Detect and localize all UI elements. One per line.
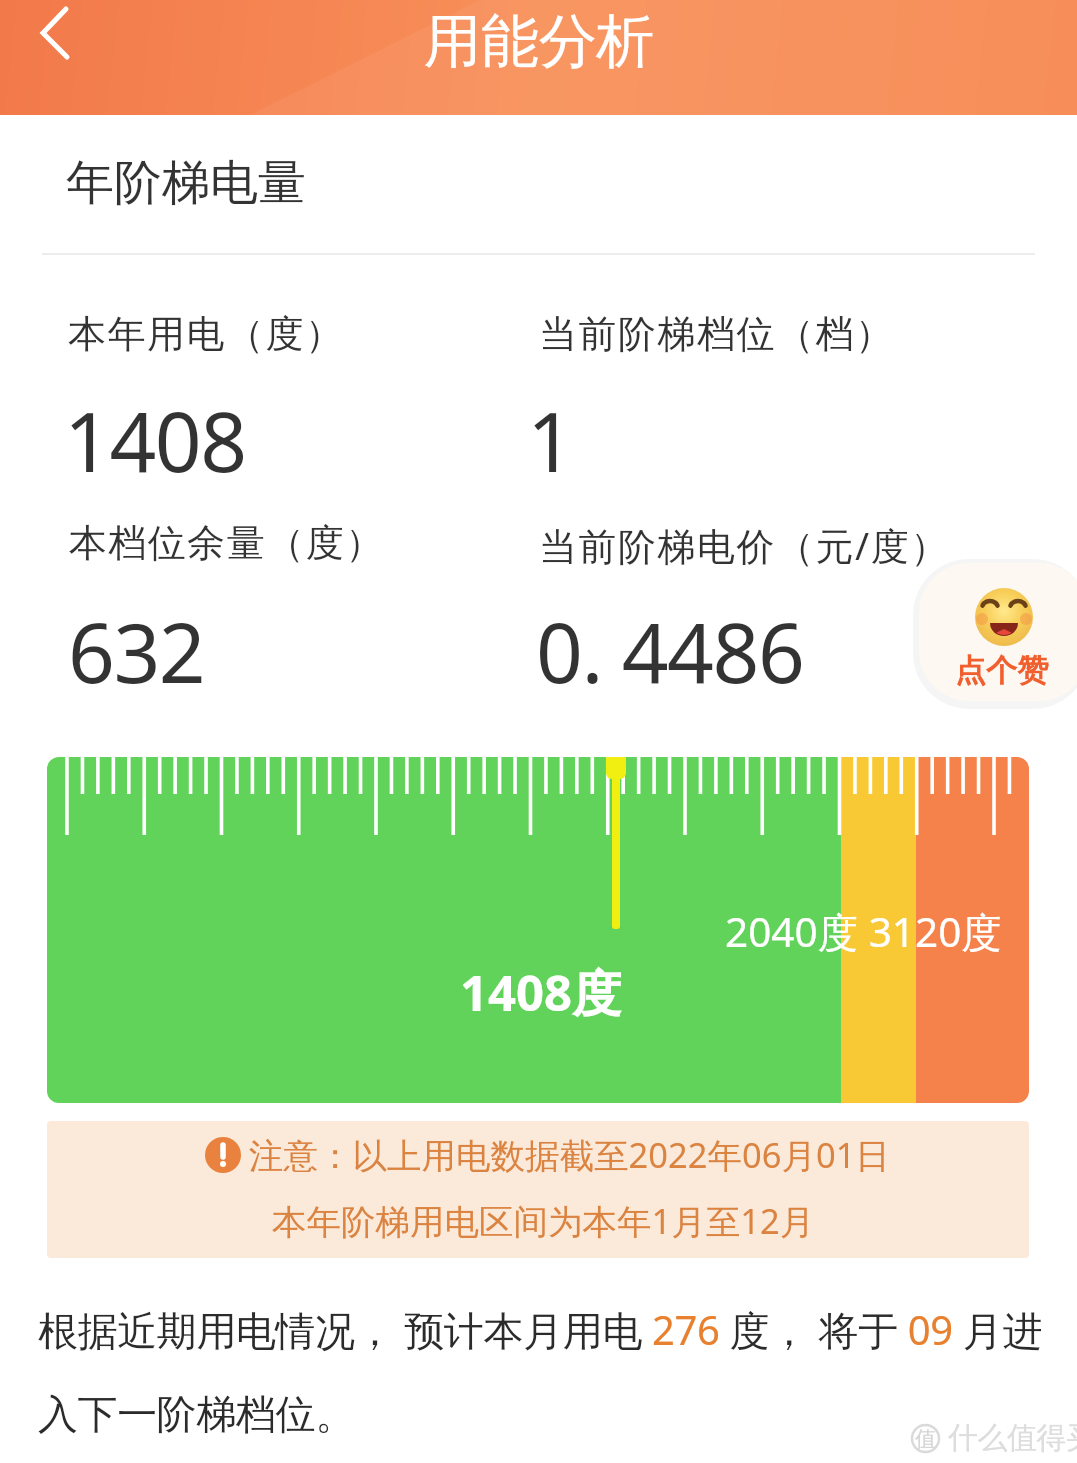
staticText: 本年阶梯用电区间为本年1月至12月 [272, 1197, 815, 1244]
button[interactable]: 点个赞 [919, 563, 1077, 701]
staticText: 当前阶梯电价（元/度） [539, 519, 950, 571]
staticText: 注意：以上用电数据截至2022年06月01日 [249, 1131, 890, 1178]
staticText: 2040度 3120度 [725, 904, 1002, 959]
staticText: 632 [68, 595, 205, 707]
staticText: 1408 [64, 384, 246, 496]
staticText: 0. 4486 [536, 595, 804, 707]
staticText: 根据近期用电情况， 预计本月用电 276 度， 将于 09 月进 [38, 1302, 1042, 1357]
staticText: 什么值得买 [948, 1419, 1077, 1457]
staticText: 值 [915, 1426, 936, 1452]
staticText: 本档位余量（度） [68, 519, 384, 567]
staticText: 年阶梯电量 [66, 153, 306, 213]
staticText: 入下一阶梯档位。 [38, 1389, 355, 1439]
staticText: 用能分析 [424, 5, 654, 78]
staticText: 当前阶梯档位（档） [539, 310, 895, 358]
staticText: 本年用电（度） [68, 310, 345, 358]
button[interactable] [0, 0, 100, 90]
staticText: 1408度 [460, 959, 622, 1026]
staticText: 1 [527, 384, 573, 496]
staticText: 点个赞 [955, 651, 1048, 690]
